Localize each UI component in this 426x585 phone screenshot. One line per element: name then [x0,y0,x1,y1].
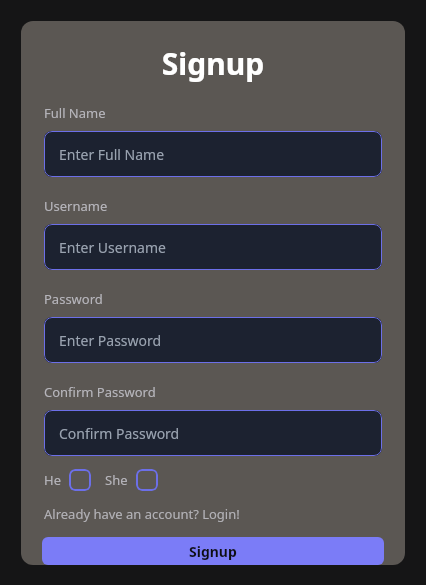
staticText: Confirm Password [44,383,156,401]
staticText: Confirm Password [59,424,180,443]
button[interactable]: Enter Full Name [44,131,382,177]
button[interactable]: Enter Password [44,317,382,363]
button[interactable]: Select He [69,469,91,491]
staticText: Full Name [44,104,106,122]
staticText: Signup [189,542,237,561]
staticText: He [44,471,61,489]
button[interactable]: Already have an account? Login! [44,505,240,523]
button[interactable]: Enter Username [44,224,382,270]
staticText: Enter Username [59,238,166,257]
button[interactable]: Signup [42,537,384,565]
button[interactable]: Confirm Password [44,410,382,456]
staticText: Enter Full Name [59,145,165,164]
staticText: Password [44,290,103,308]
staticText: She [105,471,128,489]
staticText: Enter Password [59,331,162,350]
button[interactable]: Select She [136,469,158,491]
staticText: Username [44,197,108,215]
staticText: Signup [21,43,405,84]
